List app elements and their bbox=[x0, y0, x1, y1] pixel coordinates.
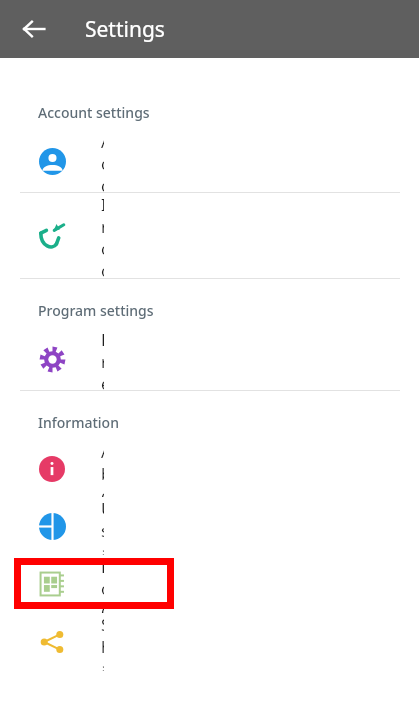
staticText: Account settings bbox=[38, 103, 150, 122]
staticText: Logs bbox=[101, 555, 104, 613]
button[interactable]: Logs bbox=[0, 555, 419, 613]
staticText: Preferences bbox=[101, 328, 104, 390]
staticText: Share with friends bbox=[101, 613, 104, 671]
button[interactable]: Back bbox=[10, 5, 58, 53]
button[interactable]: Usage bbox=[0, 497, 419, 555]
staticText: Account setup bbox=[101, 130, 104, 192]
button[interactable]: Incoming calls bbox=[0, 193, 419, 278]
staticText: Usage bbox=[101, 497, 104, 555]
staticText: About bbox=[101, 440, 104, 497]
staticText: Settings bbox=[85, 15, 165, 44]
button[interactable]: Preferences bbox=[0, 328, 419, 390]
staticText: Program settings bbox=[38, 301, 154, 320]
staticText: Incoming calls bbox=[101, 193, 104, 278]
button[interactable]: Account setup bbox=[0, 130, 419, 192]
button[interactable]: Share with friends bbox=[0, 613, 419, 671]
staticText: Information bbox=[38, 413, 119, 432]
button[interactable]: About bbox=[0, 440, 419, 497]
